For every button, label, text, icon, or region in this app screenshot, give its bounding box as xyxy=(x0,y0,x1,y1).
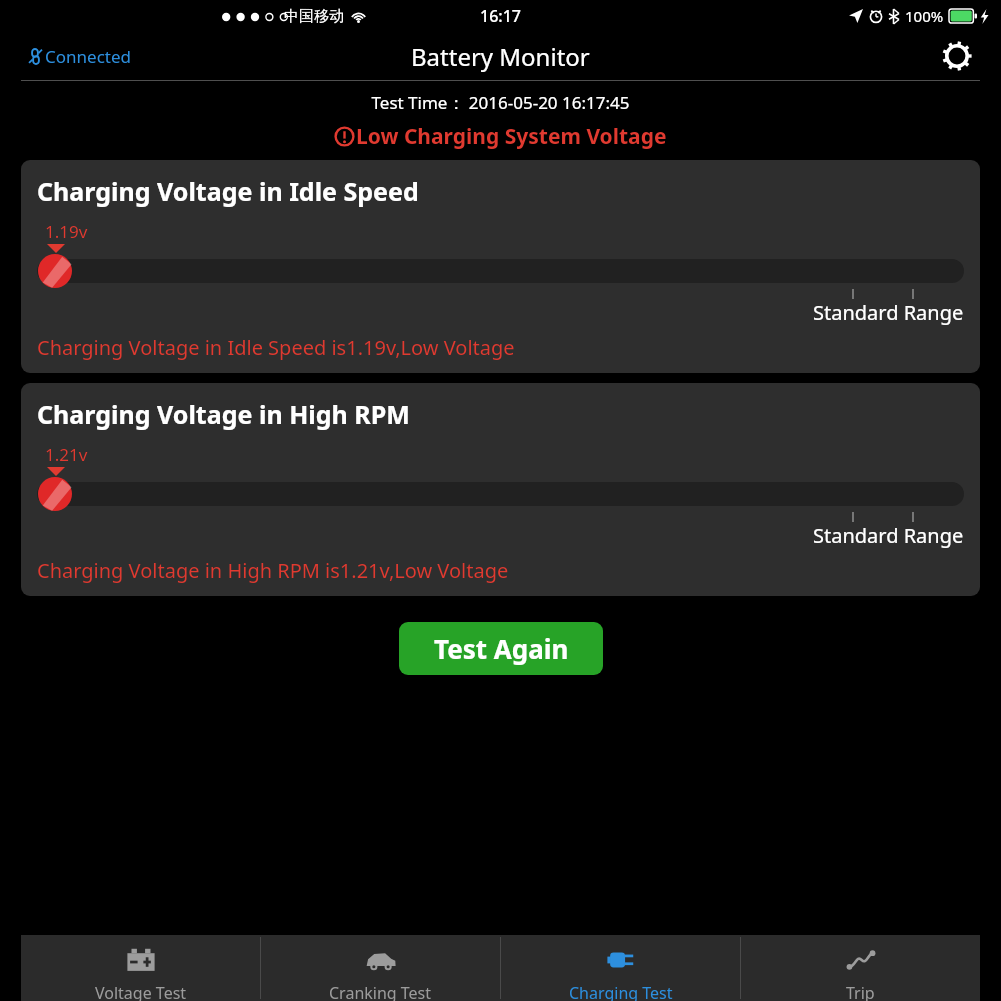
button[interactable]: Charging Voltage in High RPM xyxy=(21,383,980,596)
staticText: 100% xyxy=(905,6,944,26)
staticText: Charging Voltage in Idle Speed xyxy=(37,174,419,208)
button[interactable]: Trip xyxy=(741,935,980,1001)
staticText: Trip xyxy=(846,982,875,1001)
staticText: Charging Voltage in High RPM is1.21v,Low… xyxy=(37,557,509,584)
button[interactable]: Connected xyxy=(21,41,137,72)
staticText: Charging Voltage in High RPM xyxy=(37,397,410,431)
button[interactable]: Test Again xyxy=(399,622,603,675)
staticText: Test Time： 2016-05-20 16:17:45 xyxy=(21,91,980,114)
staticText: Voltage Test xyxy=(95,982,187,1001)
button[interactable]: Charging Voltage in Idle Speed xyxy=(21,160,980,373)
staticText: Charging Voltage in Idle Speed is1.19v,L… xyxy=(37,334,515,361)
staticText: Standard Range xyxy=(813,299,964,326)
staticText: Battery Monitor xyxy=(411,40,590,73)
button[interactable]: Voltage Test xyxy=(21,935,260,1001)
staticText: 1.21v xyxy=(45,443,88,466)
button[interactable]: Charging Test xyxy=(501,935,740,1001)
staticText: 1.19v xyxy=(45,220,88,243)
staticText: Low Charging System Voltage xyxy=(356,122,667,151)
staticText: Charging Test xyxy=(569,982,673,1001)
staticText: 中国移动 xyxy=(284,7,344,26)
button[interactable]: Settings xyxy=(934,33,980,79)
staticText: Standard Range xyxy=(813,522,964,549)
staticText: Connected xyxy=(45,45,131,68)
staticText: 16:17 xyxy=(480,5,521,27)
button[interactable]: Cranking Test xyxy=(261,935,500,1001)
staticText: Test Again xyxy=(434,631,569,666)
staticText: Cranking Test xyxy=(329,982,432,1001)
